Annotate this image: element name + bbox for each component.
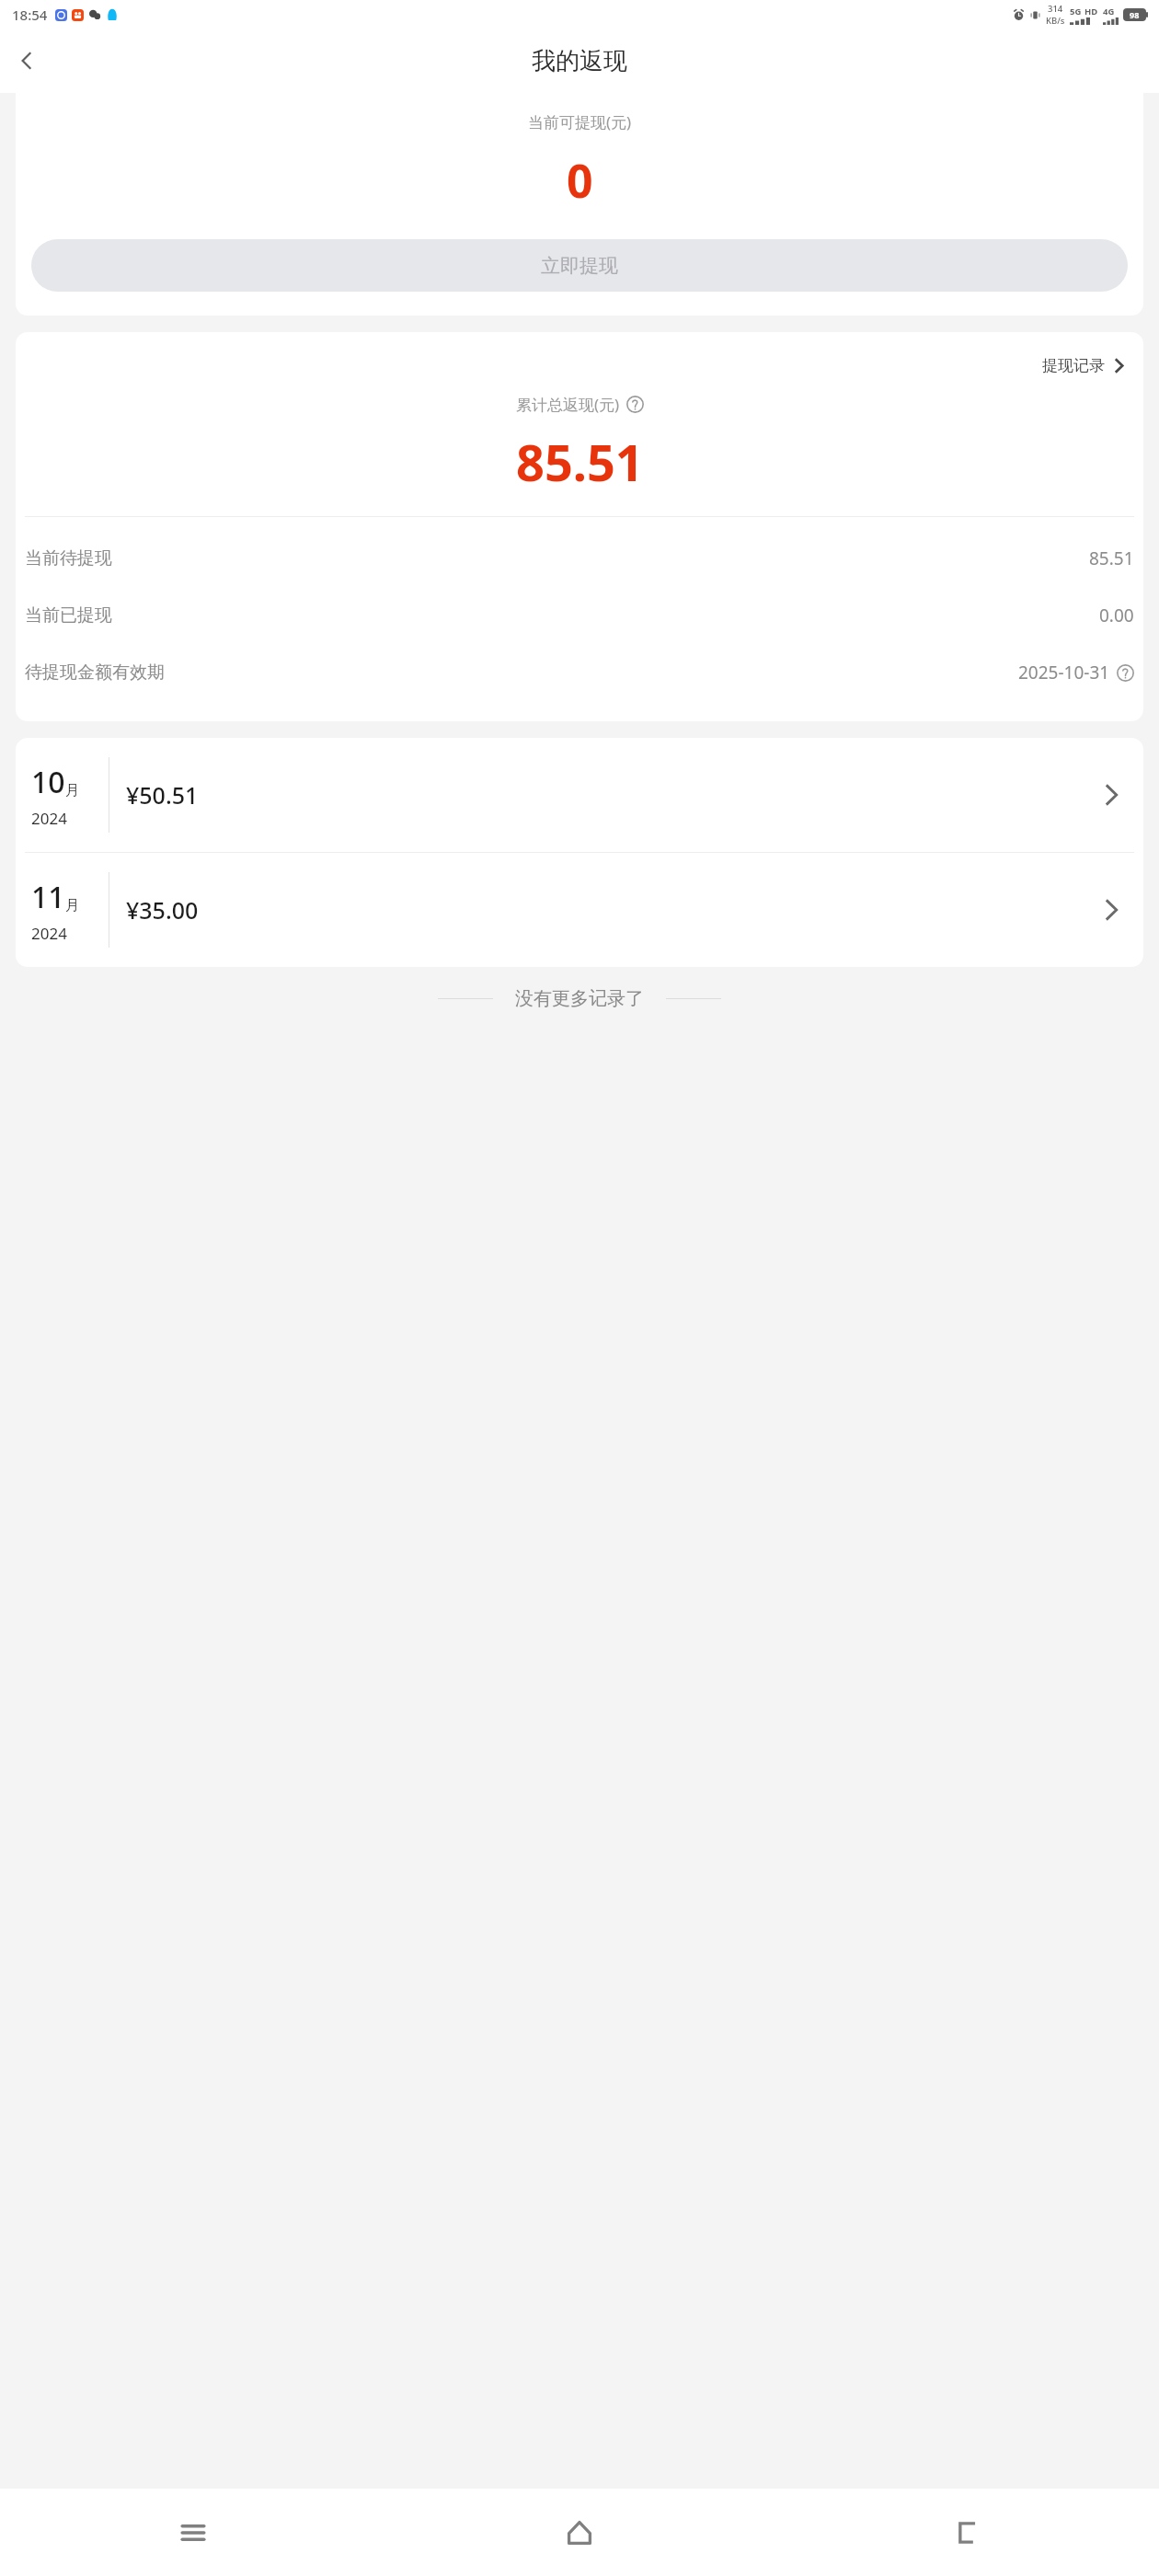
staticText: HD [1084,6,1098,17]
button[interactable]: Back [0,34,53,87]
button[interactable]: Back [773,2489,1159,2576]
button[interactable]: 立即提现 [31,239,1128,292]
staticText: 2024 [31,923,67,944]
button[interactable]: 10 [16,738,1143,852]
staticText: 我的返现 [532,46,627,76]
staticText: 314 [1048,3,1063,15]
staticText: 累计总返现(元) [516,394,620,415]
staticText: 月 [65,782,79,799]
button[interactable]: Recents [0,2489,386,2576]
staticText: 98 [1130,9,1140,20]
staticText: 5G [1070,6,1082,17]
staticText: 11 [31,877,65,917]
staticText: 没有更多记录了 [515,987,644,1010]
button[interactable]: Home [386,2489,773,2576]
staticText: ¥50.51 [126,779,199,811]
staticText: 85.51 [1089,546,1134,570]
button[interactable]: 11 [16,853,1143,967]
staticText: 18:54 [12,6,48,24]
staticText: 待提现金额有效期 [25,661,165,684]
staticText: 当前可提现(元) [528,111,632,132]
staticText: KB/s [1046,15,1065,27]
staticText: 85.51 [516,428,644,496]
staticText: 当前已提现 [25,604,112,627]
staticText: 立即提现 [541,254,618,278]
staticText: 2025-10-31 [1018,661,1110,684]
staticText: 10 [31,762,65,802]
staticText: 提现记录 [1042,356,1105,375]
staticText: 0.00 [1099,604,1134,627]
staticText: ¥35.00 [126,894,199,926]
staticText: 2024 [31,808,67,829]
staticText: 4G [1103,6,1115,17]
staticText: 月 [65,897,79,914]
button[interactable]: 提现记录 [1026,352,1143,379]
staticText: 0 [567,149,593,212]
staticText: 当前待提现 [25,547,112,569]
